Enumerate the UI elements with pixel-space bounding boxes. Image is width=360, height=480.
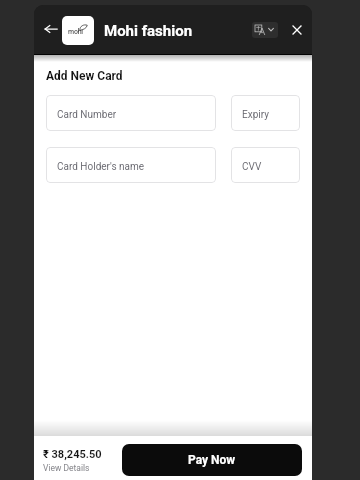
staticText: Card Number (57, 109, 117, 121)
button[interactable]: Back (39, 17, 63, 41)
button[interactable]: Expiry (231, 95, 300, 131)
staticText: CVV (242, 161, 262, 173)
button[interactable]: Pay Now (122, 444, 302, 476)
button[interactable]: Card Holder's name (46, 147, 216, 183)
button[interactable]: Card Number (46, 95, 216, 131)
button[interactable]: CVV (231, 147, 300, 183)
button[interactable]: Close (286, 19, 308, 41)
button[interactable]: Translate language (252, 22, 278, 38)
staticText: Expiry (242, 109, 269, 121)
staticText: mohi (68, 28, 83, 36)
staticText: Pay Now (188, 453, 236, 467)
staticText: ₹ 38,245.50 (43, 448, 102, 461)
staticText: Add New Card (46, 69, 123, 83)
staticText: Mohi fashion (104, 22, 193, 40)
staticText: Card Holder's name (57, 161, 145, 173)
staticText: View Details (43, 463, 90, 473)
button[interactable]: ₹ 38,245.50 (43, 448, 102, 473)
